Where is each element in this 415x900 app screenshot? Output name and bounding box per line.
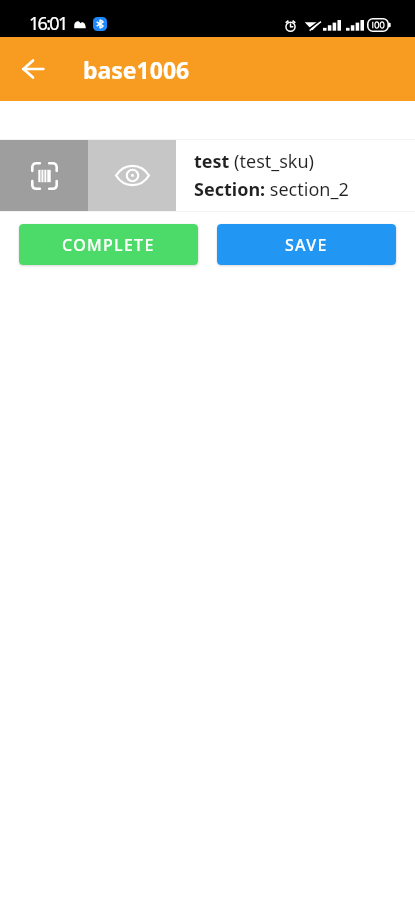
staticText: SAVE [285,234,328,256]
staticText: base1006 [83,54,190,85]
staticText: COMPLETE [62,234,155,256]
staticText: test (test_sku) [194,149,315,174]
button[interactable]: View details [88,140,176,211]
button[interactable]: SAVE [217,224,396,265]
staticText: Section: section_2 [194,177,349,202]
button[interactable]: COMPLETE [19,224,198,265]
button[interactable]: Back [13,49,53,89]
button[interactable]: Scan barcode [0,140,88,211]
staticText: 16:01 [29,11,67,36]
